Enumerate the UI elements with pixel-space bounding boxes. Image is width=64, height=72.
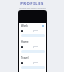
staticText: PROFILES xyxy=(20,1,44,7)
button[interactable]: Travel xyxy=(20,56,45,72)
staticText: Create and switch profiles xyxy=(19,7,46,10)
staticText: Work xyxy=(21,24,28,28)
button[interactable]: Home xyxy=(20,40,45,56)
staticText: Home xyxy=(21,40,29,44)
button[interactable]: Work xyxy=(20,24,45,40)
staticText: Travel xyxy=(21,56,29,60)
